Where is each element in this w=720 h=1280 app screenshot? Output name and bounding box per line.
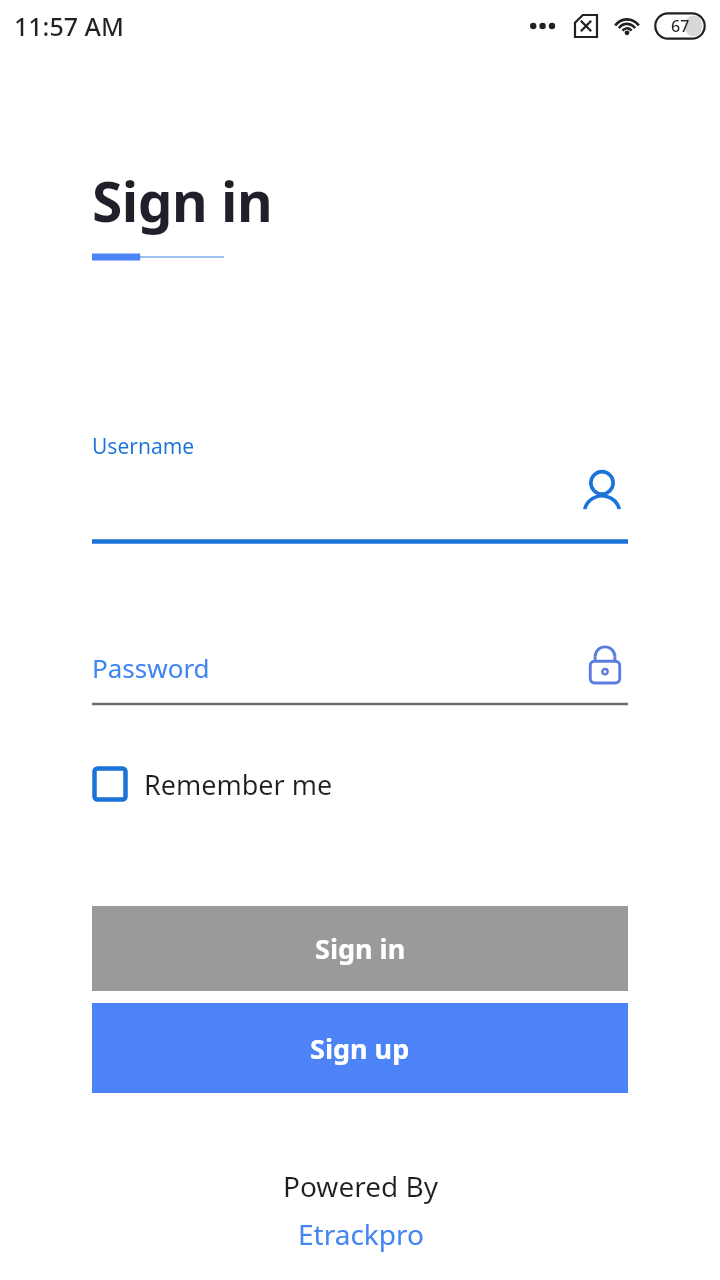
staticText: Sign in [315, 930, 406, 967]
staticText: Powered By [283, 1167, 438, 1205]
staticText: Remember me [144, 766, 333, 803]
staticText: Password [92, 650, 210, 685]
button[interactable]: Sign up [92, 1003, 628, 1093]
staticText: 11:57 AM [14, 9, 124, 43]
staticText: Sign in [92, 163, 273, 238]
other: Password [582, 642, 628, 688]
staticText: 67 [671, 15, 690, 37]
other: Username [576, 468, 628, 520]
button[interactable]: Password [92, 640, 628, 706]
button[interactable]: Remember me [92, 760, 345, 808]
button[interactable]: Sign in [92, 906, 628, 991]
staticText: Sign up [310, 1030, 410, 1067]
staticText: Username [92, 432, 195, 461]
button[interactable]: Username [92, 432, 628, 544]
button[interactable]: Etrackpro [298, 1215, 424, 1253]
